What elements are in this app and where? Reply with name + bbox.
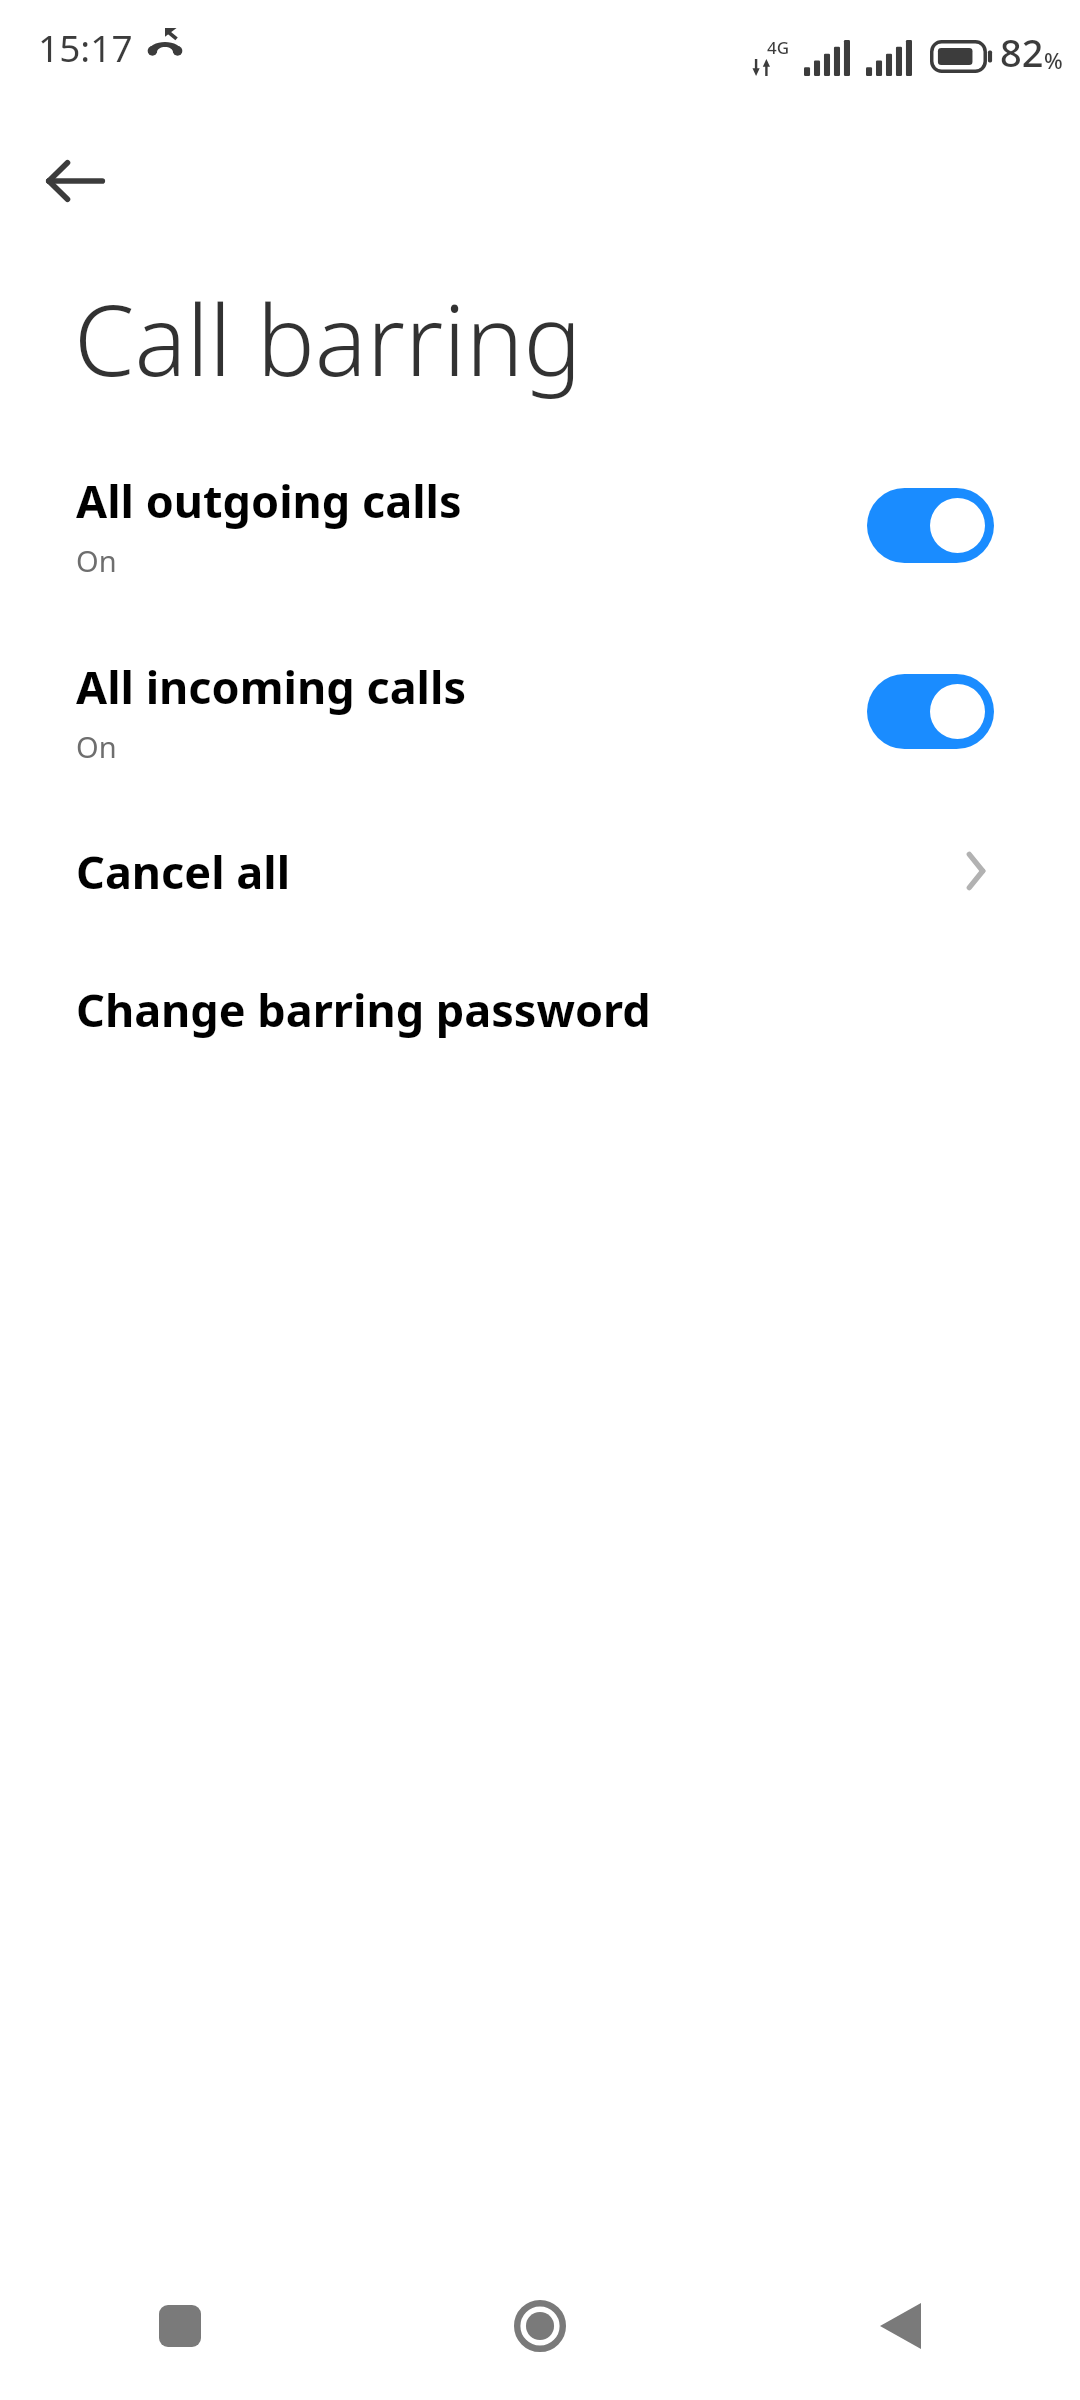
button[interactable]: Home <box>360 2252 720 2400</box>
staticText: Change barring password <box>76 979 651 1040</box>
staticText: Call barring <box>74 272 582 404</box>
button[interactable]: All incoming calls switch, on <box>867 674 994 749</box>
button[interactable]: Back <box>32 138 118 224</box>
button[interactable]: Cancel all <box>0 823 1080 919</box>
button[interactable]: Recents <box>0 2252 360 2400</box>
staticText: 82 <box>1000 26 1044 78</box>
button[interactable]: Change barring password <box>0 961 1080 1057</box>
button[interactable]: Back <box>720 2252 1080 2400</box>
staticText: % <box>1044 45 1063 75</box>
button[interactable]: All outgoing calls switch, on <box>867 488 994 563</box>
button[interactable]: All incoming calls <box>0 651 1080 771</box>
staticText: 4G <box>767 36 790 59</box>
button[interactable]: All outgoing calls <box>0 465 1080 585</box>
staticText: All outgoing calls <box>76 470 462 531</box>
staticText: On <box>76 541 117 580</box>
staticText: All incoming calls <box>76 656 467 717</box>
staticText: On <box>76 727 117 766</box>
staticText: Cancel all <box>76 841 964 902</box>
staticText: 15:17 <box>38 22 133 72</box>
